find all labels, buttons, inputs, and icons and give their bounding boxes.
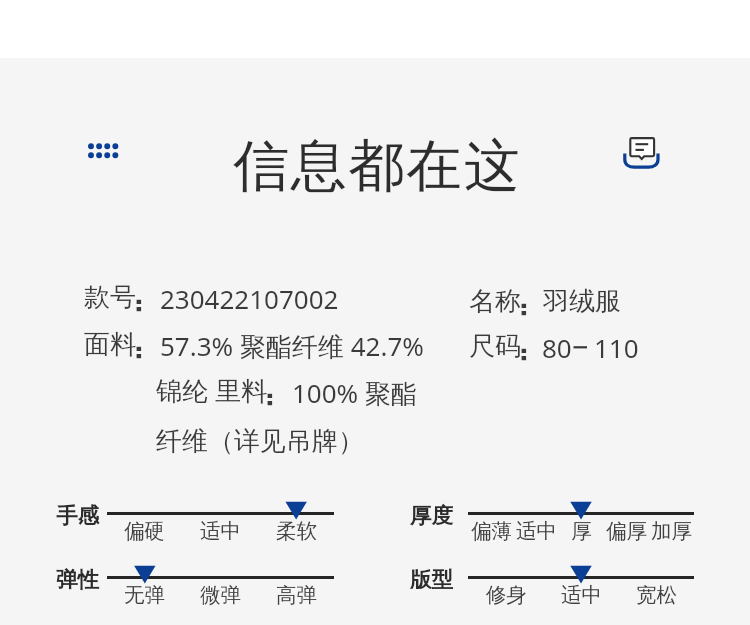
button[interactable]: 宽松 [619,582,694,610]
staticText: 偏硬 [124,518,165,544]
button[interactable]: 适中 [182,518,258,546]
button[interactable]: 无弹 [107,582,182,610]
staticText: 微弹 [200,582,241,608]
staticText: 加厚 [651,518,692,544]
staticText: 纤维（详见吊牌） [156,425,364,458]
staticText: 80 [542,330,572,365]
staticText: 偏薄 [471,518,512,544]
staticText: 厚 [571,518,592,544]
staticText: 厚度 [410,502,453,529]
button[interactable]: 适中 [544,582,619,610]
staticText: 高弹 [276,582,317,608]
staticText: 适中 [200,518,241,544]
staticText: 里料 [215,375,267,408]
staticText: 偏厚 [606,518,647,544]
staticText: 弹性 [56,566,99,593]
staticText: 适中 [561,582,602,608]
staticText: 手感 [56,502,99,529]
button[interactable]: 偏薄 [468,518,514,546]
staticText: 版型 [410,566,453,593]
staticText: 名称 [469,285,521,318]
staticText: 宽松 [636,582,677,608]
button[interactable]: 高弹 [258,582,334,610]
button[interactable]: 柔软 [258,518,334,546]
staticText: 款号 [84,281,136,314]
staticText: 尺码 [469,330,521,363]
staticText: 信息都在这 [233,131,522,202]
button[interactable]: 偏硬 [107,518,182,546]
button[interactable]: 加厚 [649,518,694,546]
staticText: 230422107002 [160,281,339,316]
staticText: 锦纶 [156,375,208,408]
staticText: 修身 [486,582,527,608]
button[interactable]: 微弹 [182,582,258,610]
button[interactable]: 修身 [468,582,544,610]
staticText: 110 [594,330,639,365]
staticText: 面料 [84,328,136,361]
staticText: 100% 聚酯 [292,375,417,411]
staticText: 57.3% 聚酯纤维 42.7% [160,328,424,364]
button[interactable]: More [86,140,120,161]
staticText: 无弹 [124,582,165,608]
button[interactable]: Messages [620,132,666,172]
staticText: 柔软 [276,518,317,544]
button[interactable]: 厚 [559,518,604,546]
button[interactable]: 适中 [514,518,559,546]
staticText: 羽绒服 [543,285,621,318]
staticText: 适中 [516,518,557,544]
button[interactable]: 偏厚 [604,518,649,546]
